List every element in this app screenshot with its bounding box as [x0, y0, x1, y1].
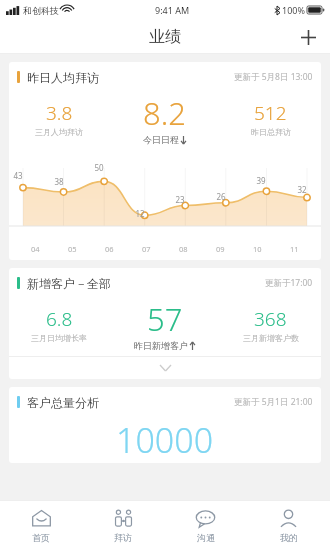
staticText: 客户总量分析	[27, 395, 99, 410]
staticText: 12	[135, 208, 145, 219]
staticText: 昨日新增客户	[134, 340, 188, 351]
staticText: 更新于 5月8日 13:00	[234, 71, 313, 83]
staticText: 9:41 AM	[155, 4, 190, 16]
staticText: 三月新增客户数	[243, 333, 299, 343]
staticText: 和创科技	[23, 5, 59, 16]
staticText: 32	[297, 184, 307, 195]
staticText: 11	[290, 244, 299, 254]
staticText: 368	[254, 306, 287, 332]
staticText: 三月日均增长率	[31, 333, 87, 343]
staticText: 新增客户－全部	[27, 276, 111, 291]
staticText: 04	[31, 244, 40, 254]
staticText: 08	[179, 244, 188, 254]
button[interactable]: 沟通	[164, 500, 247, 550]
button[interactable]: 我的	[247, 500, 330, 550]
staticText: 05	[68, 244, 77, 254]
staticText: 512	[254, 100, 287, 126]
staticText: 拜访	[114, 532, 132, 543]
staticText: 50	[94, 162, 104, 173]
staticText: 8.2	[143, 92, 186, 134]
staticText: 57	[147, 298, 183, 340]
staticText: 更新于 5月1日 21:00	[234, 396, 313, 408]
button[interactable]: 拜访	[82, 500, 164, 550]
staticText: 业绩	[149, 27, 181, 47]
staticText: 我的	[280, 532, 298, 543]
staticText: 23	[175, 194, 185, 205]
staticText: 07	[142, 244, 151, 254]
staticText: 100%	[282, 4, 305, 16]
button[interactable]: 首页	[0, 500, 82, 550]
staticText: 首页	[32, 532, 50, 543]
staticText: 10	[253, 244, 262, 254]
staticText: 沟通	[197, 532, 215, 543]
button[interactable]: 新增客户－全部	[9, 268, 321, 379]
staticText: 06	[105, 244, 114, 254]
staticText: 三月人均拜访	[35, 127, 83, 137]
staticText: 今日日程	[143, 134, 179, 145]
button[interactable]: 客户总量分析	[9, 387, 321, 463]
staticText: 38	[54, 176, 64, 187]
staticText: 43	[13, 170, 23, 181]
button[interactable]: 昨日人均拜访	[9, 62, 321, 260]
staticText: 更新于17:00	[265, 277, 313, 289]
staticText: 昨日人均拜访	[27, 70, 99, 85]
staticText: 39	[256, 175, 266, 186]
staticText: 昨日总拜访	[251, 127, 291, 137]
staticText: 10000	[116, 417, 214, 463]
button[interactable]: Add	[292, 21, 324, 53]
staticText: 6.8	[46, 306, 73, 332]
staticText: 26	[216, 191, 226, 202]
staticText: 09	[216, 244, 225, 254]
staticText: 3.8	[46, 100, 73, 126]
